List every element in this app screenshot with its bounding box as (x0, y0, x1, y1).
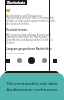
button[interactable]: Play (28, 57, 35, 64)
button[interactable]: Hörverständnis mit dem Audiotrainer verb… (0, 73, 64, 100)
button[interactable]: Forward (42, 58, 47, 63)
staticText: Deutsch lernen (6, 28, 28, 32)
staticText: Nachrichten und Themen aus Deutschland u… (6, 14, 57, 26)
staticText: Hörverständnis mit dem Audiotrainer verb… (5, 81, 59, 92)
staticText: Wortschatz (7, 1, 25, 5)
button[interactable]: Wortschatz (6, 0, 27, 5)
staticText: Langsam gesprochene Nachrichten (6, 47, 52, 51)
button[interactable]: Rewind (17, 58, 22, 63)
staticText: Audio 12:30 min (6, 51, 25, 54)
staticText: Mit unseren kostenlosen Kursen und Übung… (6, 33, 57, 45)
